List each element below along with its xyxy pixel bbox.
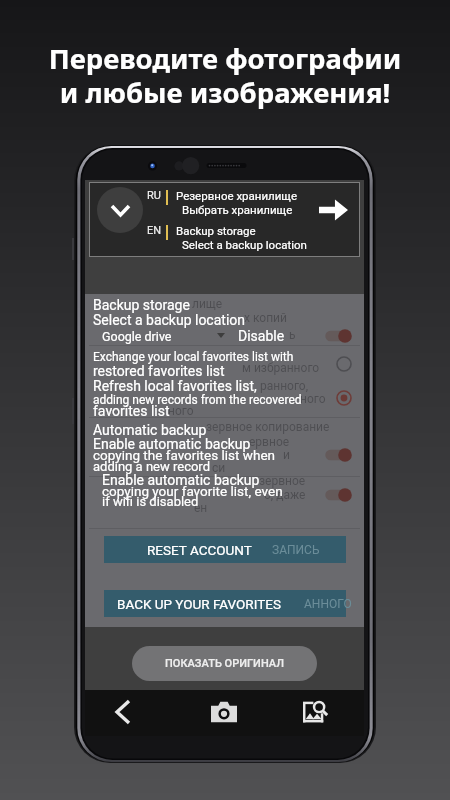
staticText: си [212, 461, 226, 475]
staticText: EN [147, 224, 162, 237]
staticText: и [283, 448, 290, 462]
staticText: ен [194, 501, 208, 515]
staticText: Enable automatic backup [102, 472, 260, 488]
staticText: adding a new record [93, 459, 210, 474]
staticText: м избранного [242, 361, 320, 375]
staticText: BACK UP YOUR FAVORITES [117, 596, 281, 612]
staticText: о, даже [264, 488, 306, 502]
staticText: copying the favorites list when [93, 447, 276, 463]
staticText: RESET ACCOUNT [147, 542, 252, 558]
staticText: АННОГО [304, 597, 352, 611]
button[interactable]: Toggle [329, 328, 353, 344]
staticText: ного [300, 392, 326, 406]
staticText: Refresh local favorites list, [93, 378, 257, 394]
button[interactable]: Option [335, 389, 353, 407]
button[interactable]: АННОГО [104, 590, 346, 617]
button[interactable]: Toggle [329, 487, 353, 503]
button[interactable]: Image search [300, 696, 332, 728]
button[interactable]: Collapse [97, 187, 143, 233]
staticText: restored favorites list [93, 363, 225, 379]
staticText: Select a backup location [182, 238, 307, 251]
button[interactable]: Toggle [329, 447, 353, 463]
staticText: Backup storage [93, 297, 190, 313]
staticText: ранного, [260, 379, 309, 393]
staticText: Backup storage [176, 224, 256, 237]
staticText: Automatic backup [93, 422, 207, 438]
button[interactable]: Back [107, 696, 139, 728]
button[interactable]: Translate [316, 197, 350, 223]
button[interactable]: Collapse [89, 182, 360, 257]
staticText: Enable automatic backup [93, 436, 251, 452]
staticText: Выбрать хранилище [182, 203, 293, 216]
staticText: лище [192, 297, 223, 311]
staticText: adding new records from the recovered [93, 393, 302, 407]
staticText: Резервное хранилище [176, 189, 298, 202]
button[interactable]: Option [335, 355, 353, 373]
button[interactable]: ПОКАЗАТЬ ОРИГИНАЛ [132, 646, 317, 681]
staticText: Exchange your local favorites list with [93, 350, 294, 364]
staticText: зервное [259, 474, 306, 488]
staticText: ного [168, 404, 194, 418]
staticText: if wifi is disabled [102, 494, 199, 509]
staticText: ПОКАЗАТЬ ОРИГИНАЛ [165, 657, 285, 670]
staticText: Disable [238, 328, 285, 344]
staticText: copying your favorite list, even [102, 483, 283, 499]
staticText: RU [147, 189, 161, 202]
staticText: Google drive [102, 329, 172, 344]
staticText: ь [289, 328, 296, 342]
staticText: ЗАПИСЬ [272, 543, 320, 557]
button[interactable]: ЗАПИСЬ [104, 536, 346, 563]
staticText: х копий [244, 311, 287, 325]
staticText: Select a backup location [93, 312, 246, 328]
staticText: зервное копирование [206, 420, 330, 434]
staticText: ервное [249, 435, 290, 449]
staticText: favorites list [93, 403, 170, 419]
staticText: Переводите фотографии [0, 40, 450, 77]
button[interactable]: Camera [208, 696, 240, 728]
staticText: и любые изображения! [0, 74, 450, 111]
